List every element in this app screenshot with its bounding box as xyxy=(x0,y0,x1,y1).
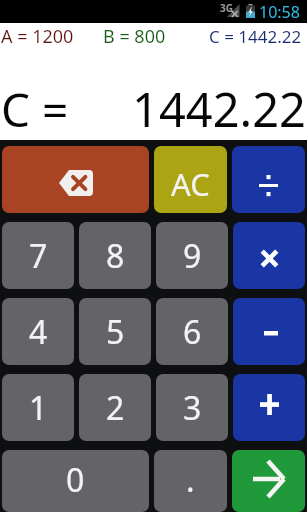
button[interactable] xyxy=(232,450,305,512)
button[interactable]: 1 xyxy=(2,374,74,441)
staticText: C = 1442.22 xyxy=(209,25,302,48)
staticText: 9 xyxy=(183,234,202,278)
staticText: . xyxy=(186,458,195,502)
staticText: B = 800 xyxy=(103,24,166,49)
button[interactable]: 2 xyxy=(79,374,151,441)
button[interactable]: 5 xyxy=(79,298,151,365)
button[interactable] xyxy=(233,374,305,441)
button[interactable]: 9 xyxy=(156,222,228,289)
staticText: 3 xyxy=(183,386,202,430)
button[interactable]: AC xyxy=(154,146,227,213)
staticText: 3G xyxy=(220,1,233,15)
button[interactable] xyxy=(233,222,305,289)
button[interactable] xyxy=(232,146,305,213)
button[interactable]: . xyxy=(154,450,227,512)
button[interactable]: 4 xyxy=(2,298,74,365)
staticText: AC xyxy=(171,163,210,205)
staticText: 8 xyxy=(106,234,125,278)
staticText: 10:58 xyxy=(259,1,300,23)
staticText: 1442.22 xyxy=(132,77,306,141)
staticText: 2 xyxy=(106,386,125,430)
button[interactable] xyxy=(2,146,149,213)
staticText: A = 1200 xyxy=(1,24,74,49)
button[interactable]: 3 xyxy=(156,374,228,441)
button[interactable]: 0 xyxy=(2,450,149,512)
button[interactable]: 6 xyxy=(156,298,228,365)
staticText: 5 xyxy=(106,310,125,354)
button[interactable]: 8 xyxy=(79,222,151,289)
staticText: 1 xyxy=(29,386,48,430)
button[interactable]: 7 xyxy=(2,222,74,289)
staticText: 7 xyxy=(29,234,48,278)
staticText: 0 xyxy=(66,458,85,502)
staticText: 4 xyxy=(29,310,48,354)
staticText: 6 xyxy=(183,310,202,354)
button[interactable] xyxy=(233,298,305,365)
staticText: C = xyxy=(1,78,69,141)
